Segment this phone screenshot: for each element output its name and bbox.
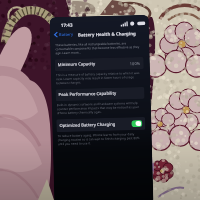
staticText: Battery Health & Charging: [78, 30, 136, 38]
staticText: This is a measure of battery capacity re…: [56, 71, 143, 85]
button[interactable]: Optimized Battery Charging toggle: [131, 120, 142, 127]
staticText: 17:43: [61, 22, 73, 28]
staticText: Battery: [59, 32, 74, 37]
button[interactable]: Minimum Capacity: [55, 57, 144, 71]
button[interactable]: Battery: [53, 32, 75, 37]
button[interactable]: Optimized Battery Charging: [56, 117, 145, 132]
button[interactable]: Peak Performance Capability: [55, 87, 145, 101]
staticText: Built-in dynamic software and hardware s…: [57, 101, 144, 115]
staticText: Optimized Battery Charging: [59, 122, 115, 129]
staticText: To reduce battery aging, iPhone learns f…: [58, 132, 145, 146]
staticText: These batteries, like all rechargeable b…: [55, 41, 142, 55]
staticText: 100%: [130, 61, 141, 66]
staticText: Minimum Capacity: [58, 61, 96, 68]
staticText: Peak Performance Capability: [58, 91, 117, 98]
